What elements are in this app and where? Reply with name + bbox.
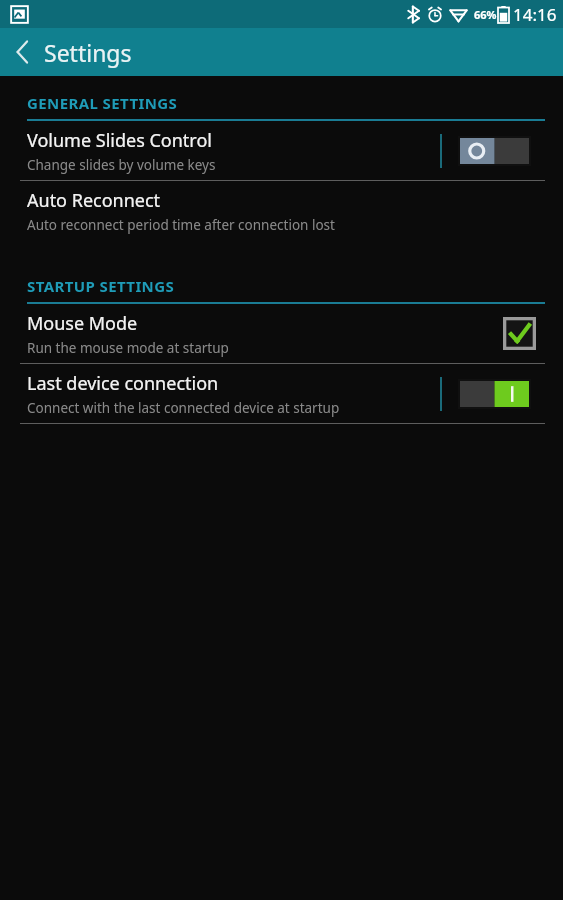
button[interactable]: Last device connection <box>0 364 563 423</box>
button[interactable]: Back <box>0 28 44 76</box>
staticText: Auto Reconnect <box>27 188 161 213</box>
staticText: GENERAL SETTINGS <box>27 93 178 113</box>
button[interactable]: Mouse Mode checkbox, checked <box>503 317 536 350</box>
button[interactable]: Mouse Mode <box>0 304 563 363</box>
button[interactable]: Switch on <box>459 380 530 408</box>
button[interactable]: Switch off <box>459 137 530 165</box>
staticText: Auto reconnect period time after connect… <box>27 216 335 234</box>
button[interactable]: Auto Reconnect <box>0 181 563 240</box>
staticText: Change slides by volume keys <box>27 156 216 174</box>
staticText: 66% <box>474 7 497 22</box>
staticText: Volume Slides Control <box>27 128 212 153</box>
staticText: Last device connection <box>27 371 219 396</box>
staticText: Settings <box>44 37 132 68</box>
staticText: Connect with the last connected device a… <box>27 399 340 417</box>
staticText: 14:16 <box>513 3 557 26</box>
staticText: STARTUP SETTINGS <box>27 276 175 296</box>
button[interactable]: Volume Slides Control <box>0 121 563 180</box>
staticText: Mouse Mode <box>27 311 138 336</box>
staticText: Run the mouse mode at startup <box>27 339 229 357</box>
